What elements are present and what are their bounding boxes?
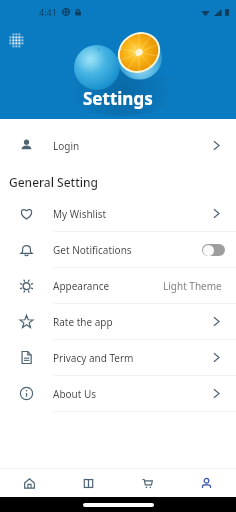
staticText: My Wishlist xyxy=(53,207,107,221)
button[interactable]: About Us xyxy=(0,376,236,411)
staticText: Settings xyxy=(83,87,153,110)
button[interactable]: Menu xyxy=(5,29,27,51)
button[interactable]: Privacy and Term xyxy=(0,340,236,375)
button[interactable]: Catalog xyxy=(59,469,118,497)
button[interactable]: Get Notifications xyxy=(0,232,236,267)
staticText: Privacy and Term xyxy=(53,351,134,365)
staticText: About Us xyxy=(53,387,97,401)
button[interactable]: Login xyxy=(0,128,236,163)
staticText: Rate the app xyxy=(53,315,113,329)
button[interactable]: Cart xyxy=(118,469,177,497)
staticText: Login xyxy=(53,139,80,153)
staticText: General Setting xyxy=(9,174,98,190)
button[interactable]: Profile xyxy=(177,469,236,497)
button[interactable]: Rate the app xyxy=(0,304,236,339)
button[interactable]: Home xyxy=(0,469,59,497)
staticText: Get Notifications xyxy=(53,243,132,257)
staticText: 4:41 xyxy=(39,6,57,18)
staticText: Appearance xyxy=(53,279,110,293)
button[interactable]: Appearance xyxy=(0,268,236,303)
button[interactable]: My Wishlist xyxy=(0,196,236,231)
staticText: Light Theme xyxy=(163,279,222,293)
